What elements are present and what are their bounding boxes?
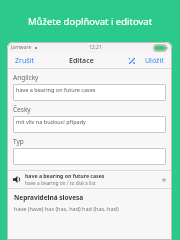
button[interactable]: Magic [127,56,137,66]
button[interactable]: have a bearing on future cases [13,84,166,101]
staticText: Jamware [11,44,32,51]
button[interactable]: mít vliv na budoucí případy [13,116,166,133]
staticText: Zrušit [15,56,34,66]
staticText: Anglicky [13,73,39,82]
staticText: Můžete doplňovat i editovat [28,15,153,28]
staticText: have a bearing on future cases [16,86,96,93]
button[interactable]: Uložit [143,55,166,67]
staticText: Typ [13,137,24,146]
staticText: Česky [13,105,31,114]
staticText: have a bearing on future cases [25,172,105,179]
staticText: have a bearing on / to dial a list [25,180,96,187]
button[interactable]: Zrušit [13,55,36,67]
button[interactable]: Play pronunciation [7,171,172,188]
staticText: mít vliv na budoucí případy [16,118,86,125]
staticText: have (have) has (has, had) had (has, had… [14,205,119,212]
staticText: Editace [69,56,94,66]
button[interactable] [13,148,166,165]
other: Play pronunciation [12,175,21,184]
button[interactable]: Favourite [160,176,167,183]
staticText: Uložit [145,56,164,66]
staticText: 12:21 [89,44,102,51]
staticText: Nepravidelná slovesa [14,193,84,202]
